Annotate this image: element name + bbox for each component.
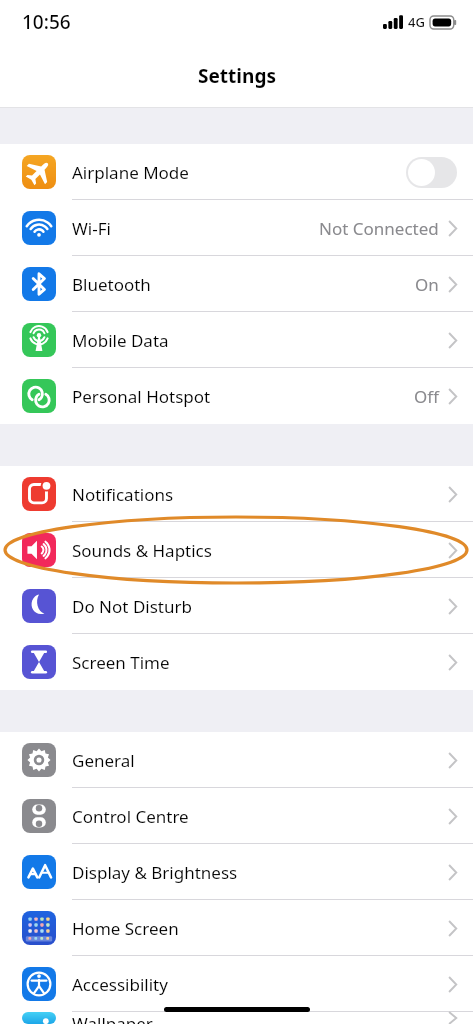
staticText: Airplane Mode — [72, 161, 189, 184]
button[interactable]: Wi-Fi — [0, 200, 473, 256]
button[interactable]: Display & Brightness — [0, 844, 473, 900]
staticText: Display & Brightness — [72, 861, 238, 884]
staticText: Screen Time — [72, 651, 170, 674]
button[interactable]: Accessibility — [0, 956, 473, 1012]
staticText: Bluetooth — [72, 273, 151, 296]
staticText: General — [72, 749, 135, 772]
button[interactable]: General — [0, 732, 473, 788]
button[interactable]: Sounds & Haptics — [0, 522, 473, 578]
button[interactable]: Wallpaper — [0, 1012, 473, 1024]
staticText: Not Connected — [319, 217, 439, 240]
staticText: Mobile Data — [72, 329, 169, 352]
staticText: Off — [414, 385, 439, 408]
staticText: Control Centre — [72, 805, 189, 828]
button[interactable]: Personal Hotspot — [0, 368, 473, 424]
staticText: Wi-Fi — [72, 217, 111, 240]
staticText: On — [415, 273, 439, 296]
button[interactable]: Bluetooth — [0, 256, 473, 312]
button[interactable]: Airplane Mode toggle — [406, 157, 457, 188]
button[interactable]: Home Screen — [0, 900, 473, 956]
staticText: Do Not Disturb — [72, 595, 192, 618]
staticText: 4G — [408, 13, 425, 31]
staticText: Sounds & Haptics — [72, 539, 212, 562]
button[interactable]: Control Centre — [0, 788, 473, 844]
button[interactable]: Airplane Mode — [0, 144, 473, 200]
staticText: 10:56 — [22, 9, 71, 35]
staticText: Settings — [198, 63, 276, 89]
staticText: Personal Hotspot — [72, 385, 211, 408]
staticText: Wallpaper — [72, 1012, 153, 1024]
button[interactable]: Notifications — [0, 466, 473, 522]
staticText: Notifications — [72, 483, 174, 506]
button[interactable]: Mobile Data — [0, 312, 473, 368]
staticText: Accessibility — [72, 973, 168, 996]
staticText: Home Screen — [72, 917, 179, 940]
button[interactable]: Screen Time — [0, 634, 473, 690]
button[interactable]: Do Not Disturb — [0, 578, 473, 634]
